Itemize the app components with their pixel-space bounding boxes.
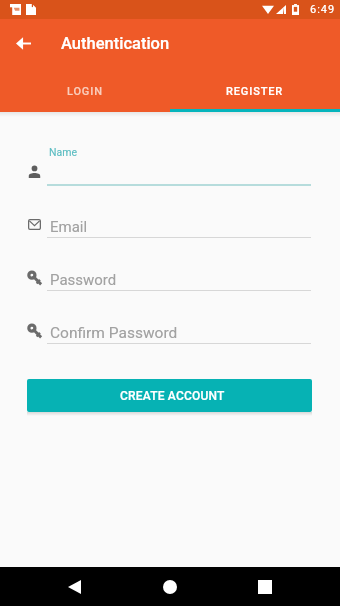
button[interactable]: Back: [9, 29, 37, 57]
button[interactable]: Recent apps: [250, 572, 280, 602]
staticText: Confirm Password: [50, 324, 178, 342]
staticText: CREATE ACCOUNT: [120, 389, 225, 403]
button[interactable]: Home: [155, 572, 185, 602]
button[interactable]: [20, 142, 320, 188]
staticText: 6:49: [310, 3, 336, 16]
button[interactable]: CREATE ACCOUNT: [27, 379, 312, 412]
staticText: Authentication: [61, 34, 170, 53]
button[interactable]: LOGIN: [0, 74, 170, 112]
button[interactable]: Back: [59, 572, 89, 602]
button[interactable]: REGISTER: [170, 74, 340, 112]
staticText: LOGIN: [67, 85, 103, 98]
button[interactable]: [20, 212, 320, 242]
staticText: Email: [50, 218, 88, 236]
staticText: Password: [50, 271, 117, 289]
button[interactable]: [20, 265, 320, 295]
staticText: Name: [49, 146, 77, 158]
button[interactable]: [20, 318, 320, 348]
staticText: REGISTER: [226, 85, 284, 98]
